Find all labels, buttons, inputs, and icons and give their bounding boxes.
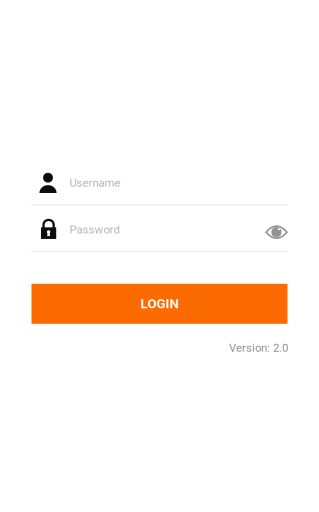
staticText: Username <box>69 176 120 190</box>
staticText: LOGIN <box>140 296 178 312</box>
staticText: Password <box>69 223 119 236</box>
button[interactable]: LOGIN <box>31 284 287 324</box>
button[interactable]: Show password <box>265 214 288 246</box>
button[interactable]: Password <box>31 210 288 252</box>
staticText: Version: 2.0 <box>229 341 288 355</box>
button[interactable]: Username <box>31 163 288 205</box>
